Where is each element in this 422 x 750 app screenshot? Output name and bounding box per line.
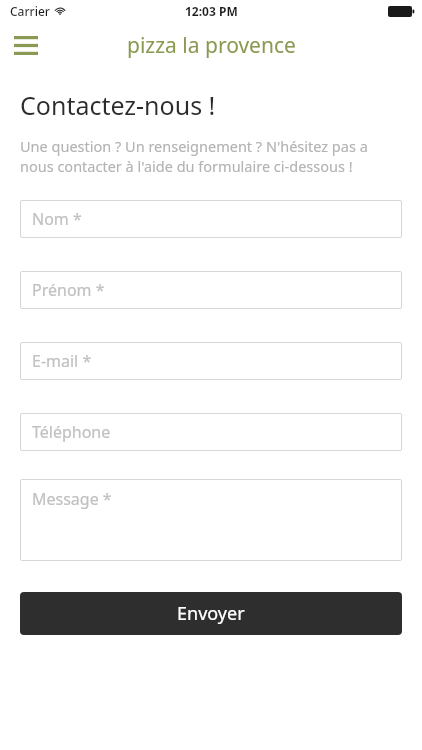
staticText: Une question ? Un renseignement ? N'hési…: [20, 136, 402, 176]
staticText: Contactez-nous !: [20, 88, 216, 122]
staticText: Nom *: [32, 208, 82, 230]
staticText: Prénom *: [32, 279, 105, 301]
button[interactable]: Prénom *: [20, 271, 402, 309]
button[interactable]: Téléphone: [20, 413, 402, 451]
staticText: Message *: [32, 488, 112, 510]
staticText: 12:03 PM: [185, 3, 238, 19]
staticText: Envoyer: [177, 601, 245, 626]
button[interactable]: Message *: [20, 479, 402, 561]
button[interactable]: Nom *: [20, 200, 402, 238]
staticText: Carrier: [10, 3, 50, 19]
button[interactable]: E-mail *: [20, 342, 402, 380]
staticText: pizza la provence: [127, 31, 296, 60]
button[interactable]: Open navigation menu: [8, 27, 44, 63]
button[interactable]: Envoyer: [20, 592, 402, 635]
staticText: E-mail *: [32, 350, 92, 372]
staticText: Téléphone: [32, 421, 111, 443]
